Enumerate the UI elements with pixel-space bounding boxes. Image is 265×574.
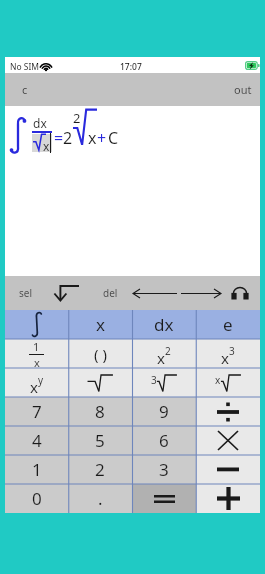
staticText: dx	[33, 115, 47, 131]
staticText: C	[108, 127, 119, 149]
staticText: 3	[229, 344, 235, 358]
button[interactable]: ( )	[68, 339, 132, 368]
button[interactable]: x	[196, 339, 260, 368]
staticText: x	[30, 377, 38, 397]
staticText: x	[88, 127, 97, 149]
button[interactable]	[132, 484, 196, 513]
staticText: 2	[95, 458, 105, 481]
button[interactable]: x	[132, 339, 196, 368]
staticText: 0	[32, 487, 42, 510]
button[interactable]: sel	[9, 276, 43, 310]
button[interactable]	[68, 368, 132, 397]
button[interactable]: del	[93, 276, 127, 310]
staticText: 8	[95, 400, 105, 423]
staticText: No SIM	[10, 61, 40, 73]
button[interactable]: x	[196, 368, 260, 397]
button[interactable]: 3	[132, 368, 196, 397]
button[interactable]: New line	[47, 276, 85, 310]
staticText: x	[96, 313, 105, 336]
staticText: 17:07	[120, 61, 142, 73]
staticText: 9	[159, 400, 169, 423]
button[interactable]: .	[68, 484, 132, 513]
staticText: del	[103, 286, 118, 300]
button[interactable]: 8	[68, 397, 132, 426]
button[interactable]	[196, 484, 260, 513]
staticText: 3	[151, 373, 157, 387]
staticText: +	[97, 127, 107, 149]
staticText: 5	[95, 429, 105, 452]
button[interactable]: 2	[68, 455, 132, 484]
button[interactable]: 1	[5, 455, 68, 484]
staticText: out	[234, 82, 252, 97]
staticText: x	[215, 373, 221, 387]
staticText: x	[157, 348, 165, 368]
button[interactable]: out	[221, 73, 265, 106]
staticText: sel	[19, 286, 33, 300]
staticText: 1	[33, 339, 40, 354]
staticText: c	[22, 82, 28, 97]
button[interactable]: x	[5, 368, 68, 397]
button[interactable]: x	[68, 310, 132, 339]
staticText: 2	[73, 109, 81, 127]
staticText: dx	[154, 313, 174, 336]
staticText: .	[98, 487, 103, 510]
staticText: x	[221, 348, 229, 368]
staticText: x	[34, 355, 40, 368]
button[interactable]: 1	[5, 339, 68, 368]
staticText: 3	[159, 458, 169, 481]
button[interactable]: 0	[5, 484, 68, 513]
staticText: 7	[32, 400, 42, 423]
staticText: x	[43, 138, 50, 154]
button[interactable]: dx	[132, 310, 196, 339]
button[interactable]: Move right	[177, 276, 225, 310]
staticText: e	[223, 313, 233, 336]
button[interactable]: 4	[5, 426, 68, 455]
staticText: =	[54, 127, 64, 149]
button[interactable]: Move left	[129, 276, 181, 310]
button[interactable]: 6	[132, 426, 196, 455]
staticText: 2	[165, 344, 171, 358]
button[interactable]: 5	[68, 426, 132, 455]
button[interactable]: 7	[5, 397, 68, 426]
staticText: 6	[159, 429, 169, 452]
button[interactable]: 9	[132, 397, 196, 426]
staticText: 4	[32, 429, 42, 452]
button[interactable]	[196, 397, 260, 426]
staticText: ( )	[94, 344, 107, 364]
staticText: 1	[32, 458, 42, 481]
button[interactable]	[5, 310, 68, 339]
button[interactable]	[196, 455, 260, 484]
button[interactable]: c	[3, 73, 47, 106]
staticText: y	[38, 373, 44, 387]
button[interactable]	[196, 426, 260, 455]
button[interactable]: e	[196, 310, 260, 339]
button[interactable]: Audio	[227, 276, 253, 310]
staticText: 2	[63, 127, 73, 149]
button[interactable]: 3	[132, 455, 196, 484]
